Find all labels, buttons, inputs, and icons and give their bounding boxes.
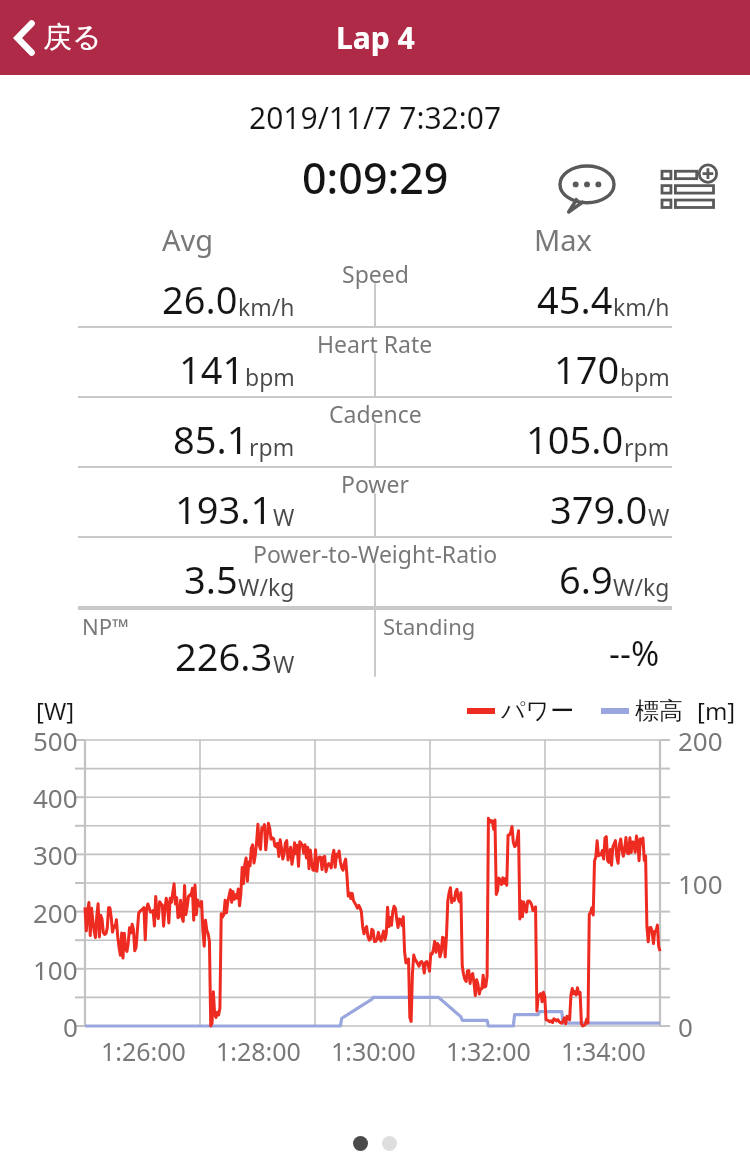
staticText: 1:28:00 [216, 1034, 301, 1068]
staticText: Max [534, 220, 592, 258]
staticText: 26.0 [162, 273, 238, 325]
staticText: W/kg [613, 571, 670, 602]
staticText: rpm [249, 431, 295, 462]
staticText: 85.1 [173, 413, 249, 465]
button[interactable]: Power-to-Weight-Ratio [0, 538, 750, 608]
staticText: W [648, 501, 670, 532]
staticText: rpm [624, 431, 670, 462]
button[interactable]: Speed [0, 258, 750, 328]
staticText: km/h [238, 291, 295, 322]
staticText: Lap 4 [336, 17, 415, 58]
staticText: 200 [678, 723, 723, 758]
staticText: 0:09:29 [302, 148, 449, 207]
staticText: bpm [620, 361, 670, 392]
staticText: Power-to-Weight-Ratio [253, 538, 498, 569]
staticText: W [273, 501, 295, 532]
staticText: 141 [179, 343, 245, 395]
staticText: 0 [63, 1009, 78, 1044]
staticText: Avg [162, 220, 214, 258]
staticText: 2019/11/7 7:32:07 [249, 97, 502, 138]
staticText: W/kg [238, 571, 295, 602]
staticText: Cadence [329, 398, 422, 429]
button[interactable]: Power [0, 468, 750, 538]
staticText: 1:30:00 [331, 1034, 416, 1068]
staticText: --% [609, 630, 660, 676]
staticText: 379.0 [550, 483, 648, 535]
button[interactable]: Cadence [0, 398, 750, 468]
staticText: 226.3 [175, 630, 273, 682]
staticText: 6.9 [559, 553, 613, 605]
staticText: 1:32:00 [446, 1034, 531, 1068]
staticText: 200 [33, 895, 78, 930]
staticText: 300 [33, 837, 78, 872]
staticText: 戻る [43, 19, 102, 56]
staticText: NP™ [82, 611, 130, 641]
staticText: Standing [383, 611, 476, 641]
button[interactable]: Comments [554, 160, 620, 218]
button[interactable]: 戻る [0, 11, 120, 64]
staticText: 100 [33, 952, 78, 987]
staticText: Power [341, 468, 409, 499]
staticText: 3.5 [184, 553, 238, 605]
staticText: 170 [554, 343, 620, 395]
staticText: [W] [36, 694, 75, 727]
staticText: 500 [33, 723, 78, 758]
staticText: 193.1 [175, 483, 273, 535]
staticText: パワー [501, 696, 575, 726]
staticText: 100 [678, 866, 723, 901]
button[interactable]: Add to list [656, 159, 724, 219]
staticText: 45.4 [537, 273, 613, 325]
staticText: W [273, 648, 295, 679]
staticText: bpm [245, 361, 295, 392]
button[interactable]: Heart Rate [0, 328, 750, 398]
staticText: 400 [33, 780, 78, 815]
staticText: 標高 [635, 696, 683, 726]
staticText: km/h [613, 291, 670, 322]
staticText: 0 [678, 1009, 693, 1044]
staticText: Heart Rate [317, 328, 433, 359]
staticText: 1:26:00 [101, 1034, 186, 1068]
staticText: 105.0 [526, 413, 624, 465]
button[interactable]: NP™ [0, 608, 750, 688]
staticText: Speed [342, 258, 409, 289]
staticText: 1:34:00 [561, 1034, 646, 1068]
staticText: [m] [697, 694, 736, 727]
